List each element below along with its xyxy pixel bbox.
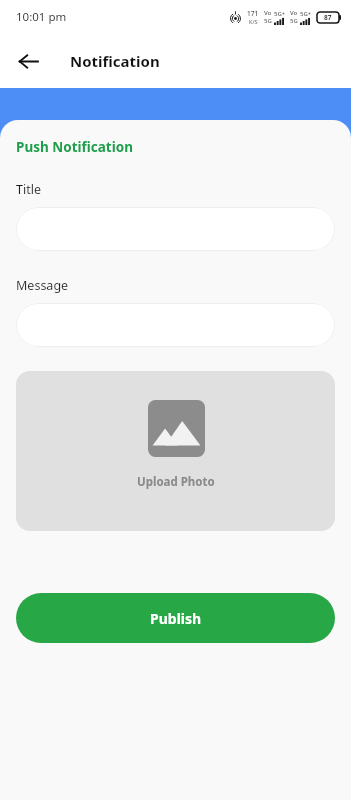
button[interactable] [16, 207, 335, 251]
staticText: Vo [290, 9, 298, 17]
button[interactable]: Back [8, 41, 48, 81]
staticText: 5G [264, 17, 272, 25]
button[interactable]: Publish [16, 593, 335, 643]
staticText: 5G+ [300, 10, 312, 18]
staticText: 10:01 pm [16, 9, 67, 25]
staticText: Message [16, 277, 69, 294]
staticText: 87 [324, 13, 332, 22]
staticText: Upload Photo [137, 474, 215, 490]
staticText: K/S [249, 18, 258, 25]
staticText: Title [16, 181, 41, 198]
staticText: 5G+ [274, 10, 286, 18]
button[interactable] [16, 303, 335, 347]
staticText: 171 [247, 9, 259, 18]
staticText: Vo [264, 9, 272, 17]
staticText: 5G [290, 17, 298, 25]
button[interactable]: Upload Photo [16, 371, 335, 531]
staticText: Publish [150, 609, 202, 628]
staticText: Notification [70, 51, 160, 71]
staticText: Push Notification [16, 138, 133, 156]
